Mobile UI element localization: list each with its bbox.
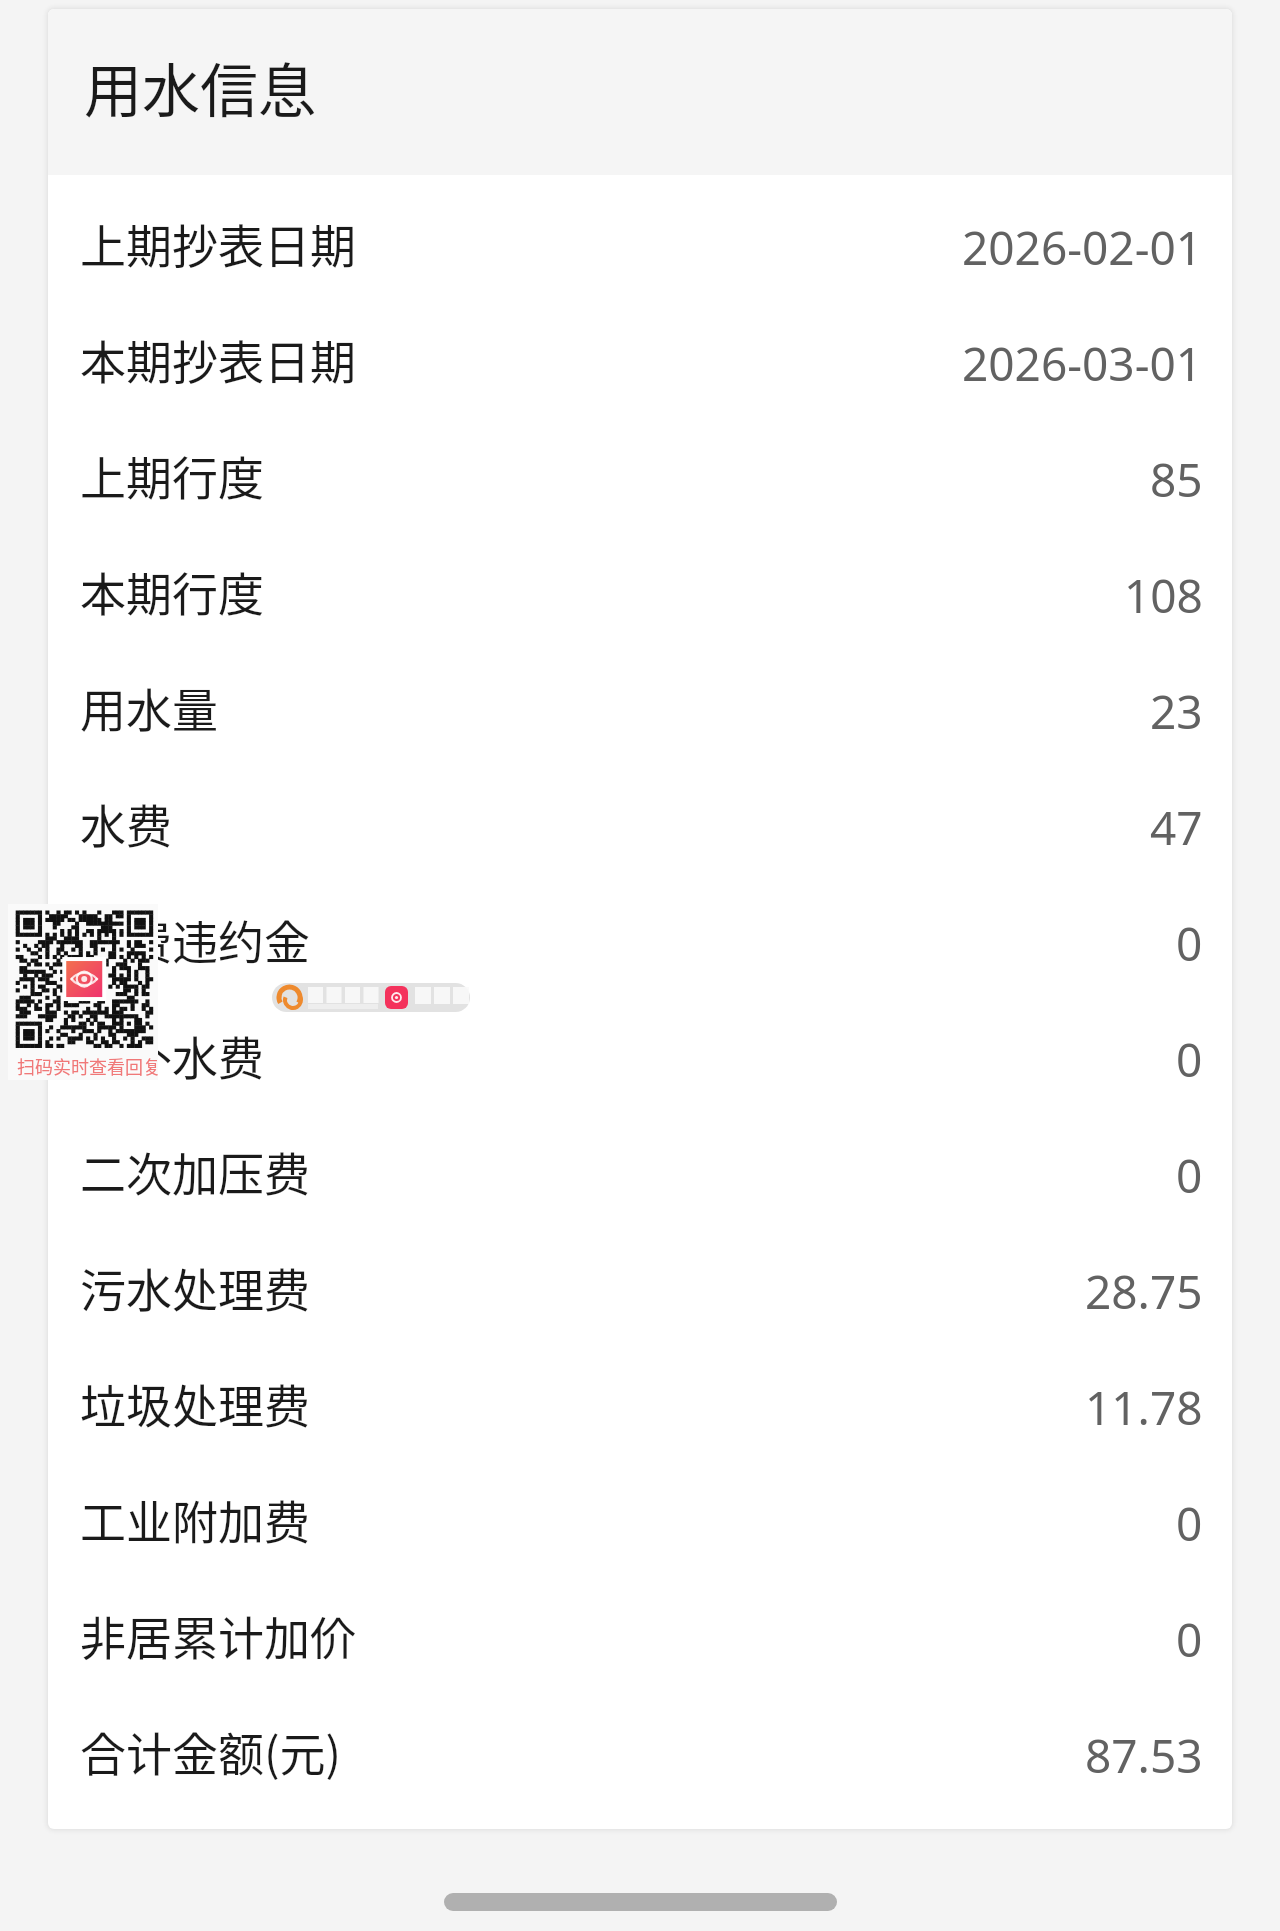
button[interactable]: 水费 <box>48 765 1232 881</box>
staticText: 28.75 <box>1085 1260 1203 1323</box>
staticText: 二次加压费 <box>80 1138 310 1205</box>
staticText: 85 <box>1150 448 1203 511</box>
button[interactable]: 水费违约金 <box>48 881 1232 997</box>
staticText: 87.53 <box>1085 1724 1203 1787</box>
staticText: 2026-03-01 <box>962 332 1203 395</box>
staticText: 退补水费 <box>80 1022 264 1089</box>
staticText: 垃圾处理费 <box>80 1370 310 1437</box>
staticText: 用水量 <box>80 674 218 741</box>
button[interactable]: 合计金额(元) <box>48 1693 1232 1809</box>
staticText: 用水信息 <box>84 45 317 129</box>
staticText: 0 <box>1176 1492 1203 1555</box>
button[interactable]: 上期抄表日期 <box>48 185 1232 301</box>
staticText: 47 <box>1150 796 1203 859</box>
staticText: 合计金额(元) <box>80 1718 342 1785</box>
button[interactable]: 工业附加费 <box>48 1461 1232 1577</box>
button[interactable]: 本期行度 <box>48 533 1232 649</box>
staticText: 0 <box>1176 1028 1203 1091</box>
button[interactable]: 垃圾处理费 <box>48 1345 1232 1461</box>
staticText: 水费违约金 <box>80 906 310 973</box>
staticText: 2026-02-01 <box>962 216 1203 279</box>
staticText: 污水处理费 <box>80 1254 310 1321</box>
staticText: 扫码实时查看回复 <box>17 1053 161 1079</box>
staticText: 非居累计加价 <box>80 1602 356 1669</box>
staticText: 上期行度 <box>80 442 264 509</box>
staticText: 108 <box>1124 564 1203 627</box>
staticText: 0 <box>1176 1144 1203 1207</box>
staticText: 水费 <box>80 790 172 857</box>
staticText: 上期抄表日期 <box>80 210 356 277</box>
staticText: 0 <box>1176 1608 1203 1671</box>
staticText: 工业附加费 <box>80 1486 310 1553</box>
staticText: 本期行度 <box>80 558 264 625</box>
button[interactable]: 本期抄表日期 <box>48 301 1232 417</box>
staticText: 23 <box>1150 680 1203 743</box>
staticText: 0 <box>1176 912 1203 975</box>
button[interactable]: 退补水费 <box>48 997 1232 1113</box>
button[interactable]: 二次加压费 <box>48 1113 1232 1229</box>
staticText: 本期抄表日期 <box>80 326 356 393</box>
button[interactable]: 用水量 <box>48 649 1232 765</box>
staticText: 11.78 <box>1085 1376 1203 1439</box>
button[interactable]: 上期行度 <box>48 417 1232 533</box>
button[interactable]: 非居累计加价 <box>48 1577 1232 1693</box>
button[interactable]: 污水处理费 <box>48 1229 1232 1345</box>
